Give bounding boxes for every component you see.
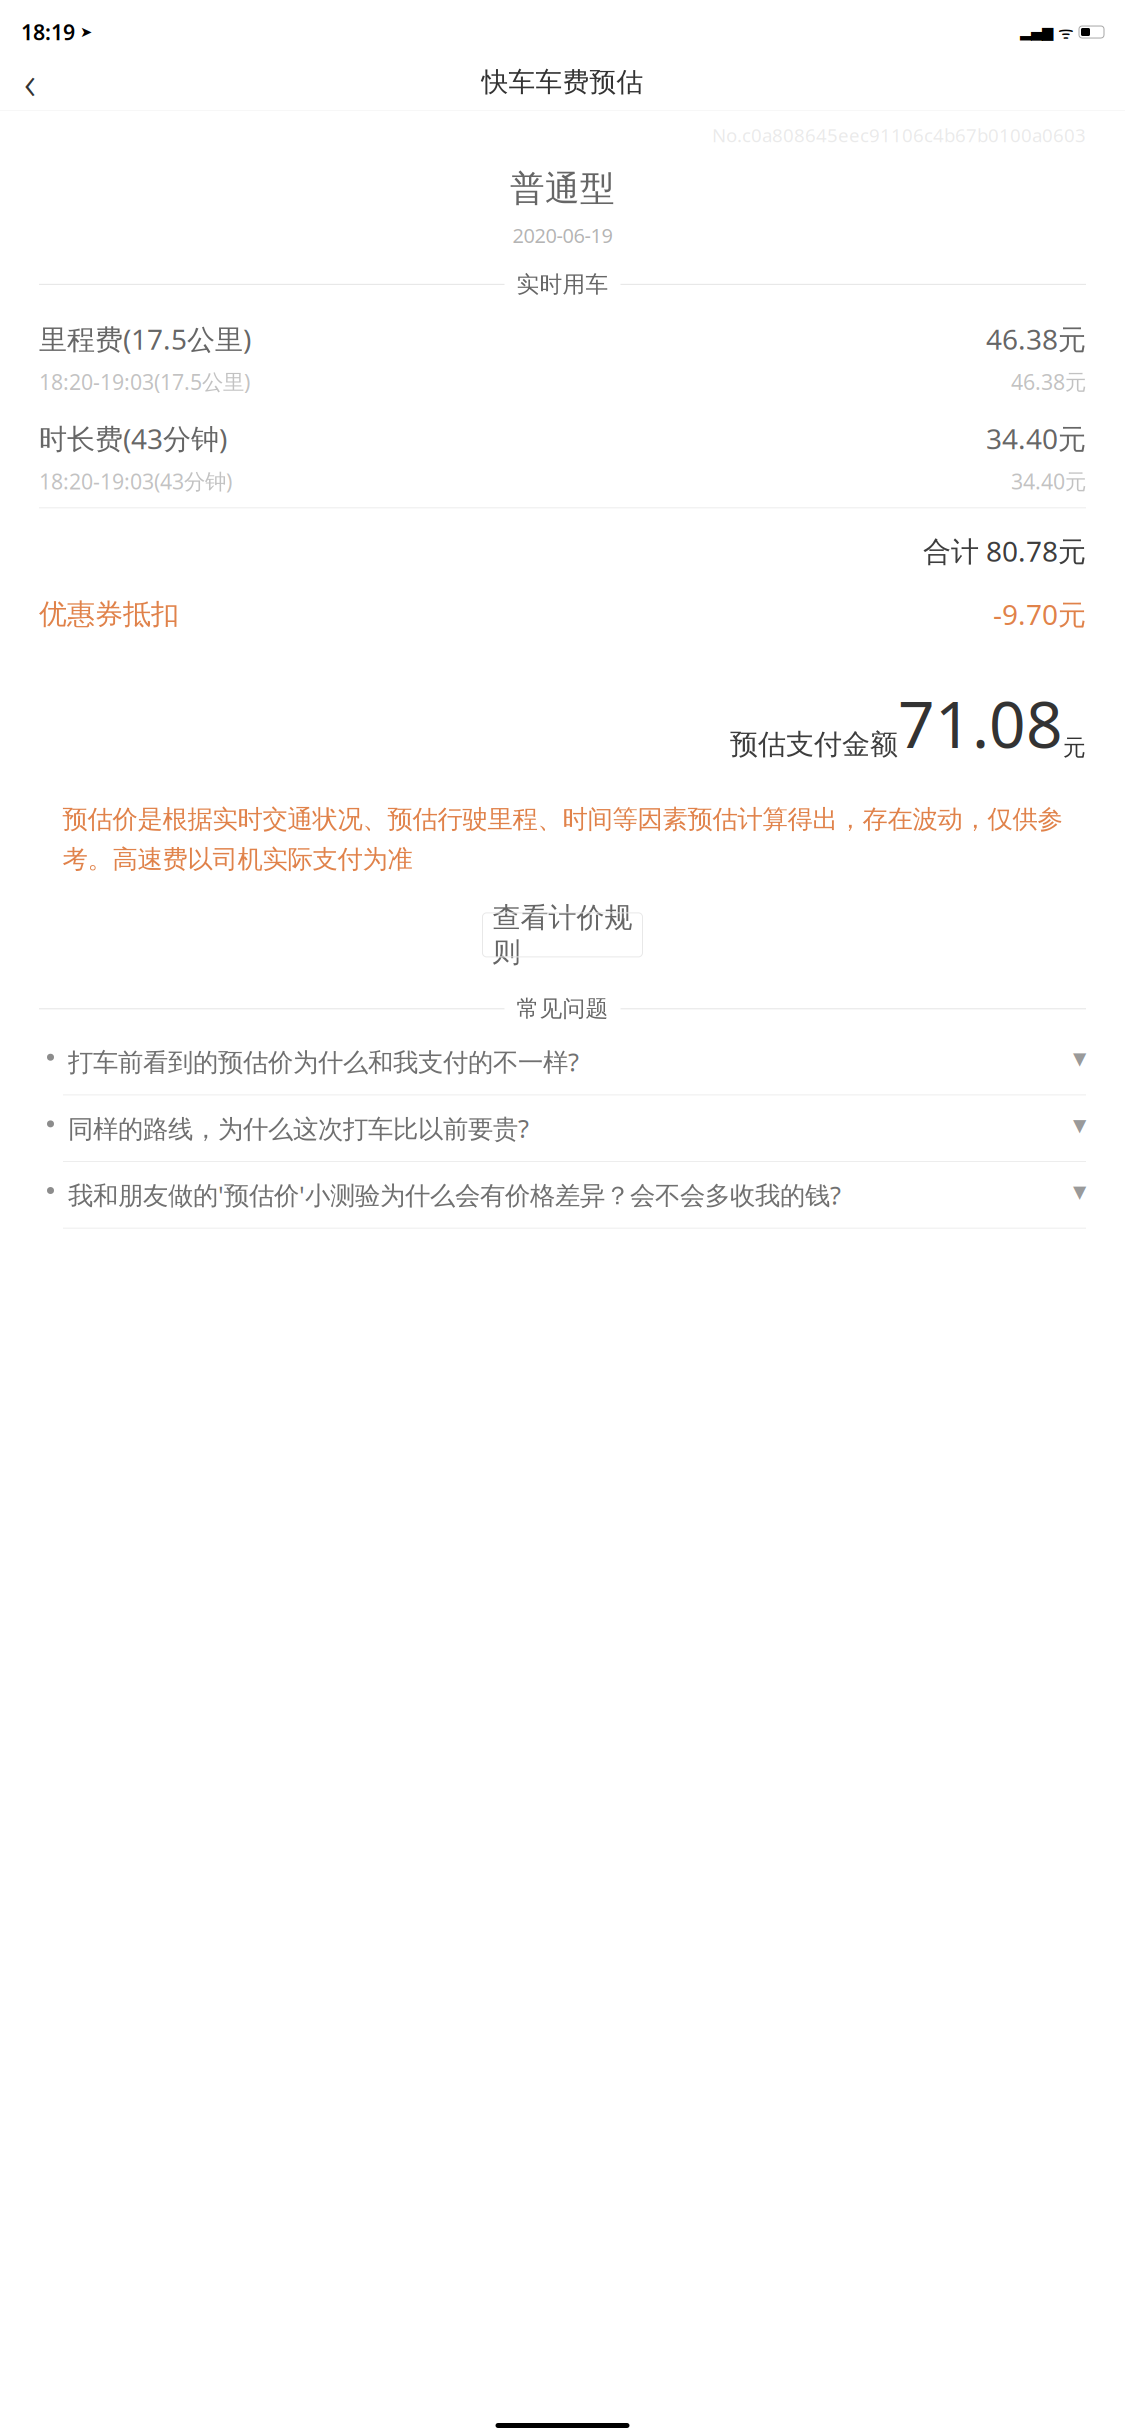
staticText: ▼ (1073, 1182, 1086, 1202)
staticText: 46.38元 (1011, 367, 1086, 396)
staticText: 18:20-19:03(43分钟) (39, 467, 232, 495)
button[interactable]: 同样的路线，为什么这次打车比以前要贵? (39, 1095, 1086, 1161)
staticText: 46.38元 (986, 320, 1086, 357)
staticText: 合计 80.78元 (923, 532, 1086, 569)
staticText: 打车前看到的预估价为什么和我支付的不一样? (68, 1045, 579, 1078)
staticText: 71.08 (898, 681, 1063, 766)
staticText: 里程费(17.5公里) (39, 320, 251, 357)
staticText: 实时用车 (516, 270, 608, 298)
button[interactable]: 打车前看到的预估价为什么和我支付的不一样? (39, 1029, 1086, 1094)
button[interactable]: 我和朋友做的'预估价'小测验为什么会有价格差异？会不会多收我的钱? (39, 1162, 1086, 1228)
staticText: 优惠券抵扣 (39, 597, 179, 631)
staticText: 预估价是根据实时交通状况、预估行驶里程、时间等因素预估计算得出，存在波动，仅供参… (62, 804, 1062, 875)
staticText: 18:19 (21, 18, 75, 46)
staticText: 34.40元 (986, 420, 1086, 457)
staticText: ‹ (24, 52, 36, 112)
staticText: 34.40元 (1011, 467, 1086, 495)
staticText: 快车车费预估 (481, 66, 643, 98)
staticText: 时长费(43分钟) (39, 420, 227, 457)
staticText: 预估支付金额 (730, 727, 898, 762)
button[interactable]: 查看计价规则 (482, 913, 642, 957)
staticText: 元 (1063, 734, 1086, 762)
staticText: 18:20-19:03(17.5公里) (39, 367, 250, 396)
staticText: ▼ (1073, 1049, 1086, 1068)
button[interactable]: 优惠券抵扣 (39, 569, 1086, 633)
staticText: 同样的路线，为什么这次打车比以前要贵? (68, 1111, 529, 1145)
button[interactable]: 返回 (8, 60, 52, 104)
staticText: -9.70元 (993, 595, 1086, 633)
staticText: 2020-06-19 (512, 222, 612, 248)
staticText: 查看计价规则 (492, 900, 632, 969)
staticText: 我和朋友做的'预估价'小测验为什么会有价格差异？会不会多收我的钱? (68, 1178, 841, 1212)
staticText: ▂▄▆ (1020, 24, 1053, 40)
staticText: 普通型 (510, 167, 615, 210)
staticText: No.c0a808645eec91106c4b67b0100a0603 (712, 122, 1086, 147)
staticText: ➤ (75, 24, 92, 40)
staticText: ▼ (1073, 1115, 1086, 1135)
staticText: 常见问题 (516, 995, 608, 1023)
staticText: ᯤ (1053, 20, 1079, 43)
